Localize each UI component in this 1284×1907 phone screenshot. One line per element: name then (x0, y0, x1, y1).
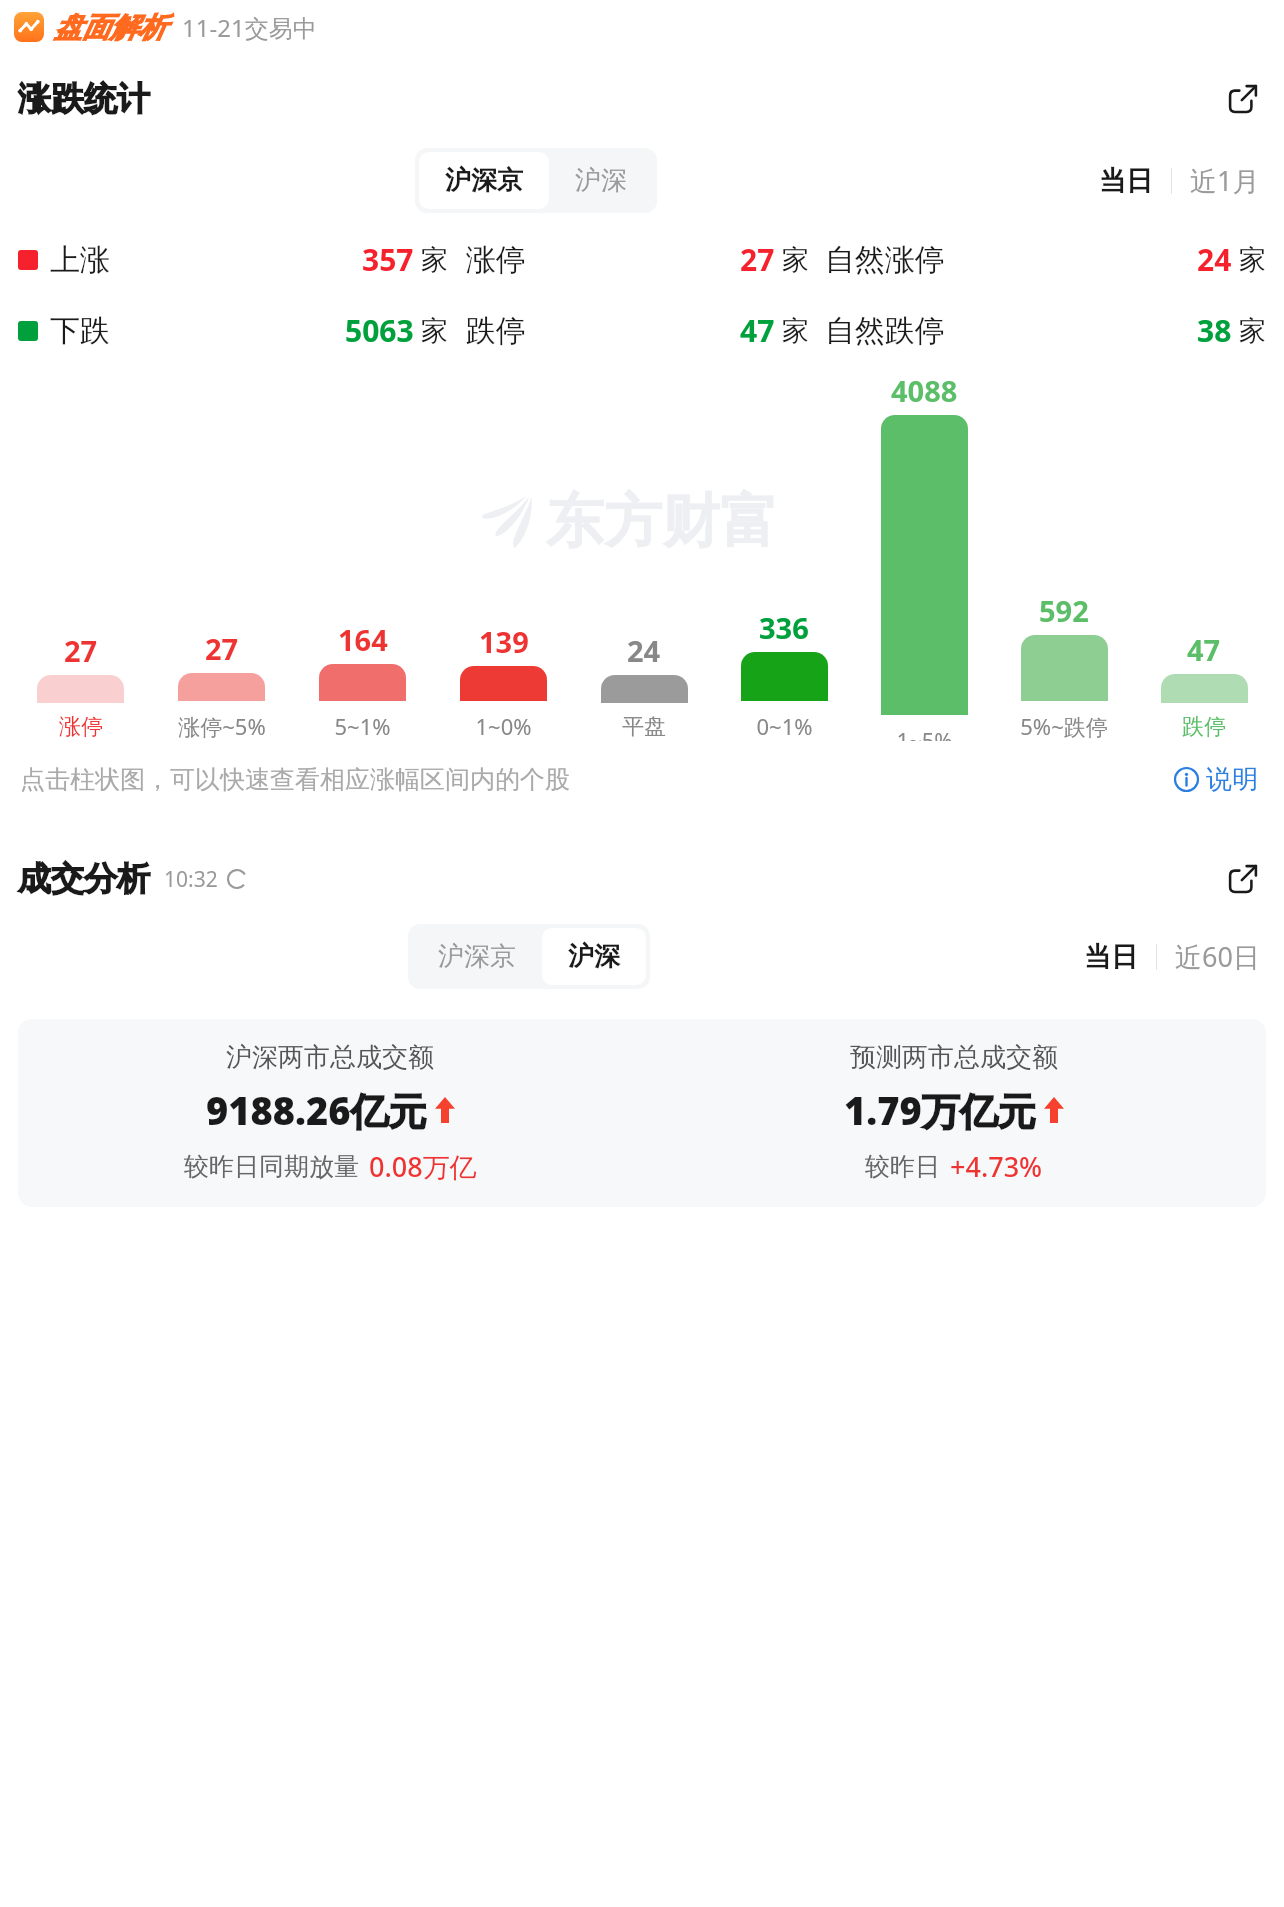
staticText: 1~0% (475, 711, 532, 741)
staticText: 11-21交易中 (182, 11, 317, 44)
staticText: 5063 (345, 310, 414, 351)
button[interactable]: 当日 (1078, 932, 1144, 982)
button[interactable]: 说明 (1168, 757, 1264, 802)
staticText: 家 (1239, 243, 1266, 277)
staticText: 自然涨停 (825, 241, 945, 279)
button[interactable]: 4088 (854, 371, 994, 741)
staticText: 1~5% (896, 725, 953, 741)
staticText: 成交分析 (18, 858, 150, 900)
staticText: 家 (1239, 314, 1266, 348)
staticText: 164 (338, 620, 388, 659)
button[interactable]: Refresh (226, 868, 248, 890)
staticText: 38 (1197, 310, 1232, 351)
staticText: 27 (740, 239, 775, 280)
staticText: 点击柱状图，可以快速查看相应涨幅区间内的个股 (20, 764, 570, 795)
staticText: 5~1% (334, 711, 391, 741)
staticText: 0.08万亿 (369, 1148, 477, 1185)
button[interactable]: 当日 (1093, 156, 1159, 206)
staticText: 沪深京 (445, 164, 523, 197)
staticText: 24 (1197, 239, 1232, 280)
staticText: 近60日 (1175, 938, 1260, 975)
button[interactable]: 27 (10, 371, 151, 741)
staticText: 336 (759, 608, 809, 647)
button[interactable]: 近1月 (1184, 154, 1266, 207)
button[interactable]: Open detail (1220, 856, 1266, 902)
button[interactable]: 336 (714, 371, 854, 741)
staticText: 家 (782, 314, 809, 348)
staticText: 说明 (1206, 763, 1258, 796)
staticText: 跌停 (1182, 713, 1226, 741)
staticText: 4088 (891, 371, 958, 410)
staticText: 涨停~5% (178, 711, 266, 741)
staticText: 当日 (1099, 164, 1153, 198)
staticText: 盘面解析 (54, 10, 166, 45)
staticText: 10:32 (164, 865, 218, 894)
staticText: 自然跌停 (825, 312, 945, 350)
button[interactable]: 沪深京 (419, 152, 549, 209)
staticText: 沪深 (575, 164, 627, 197)
staticText: 近1月 (1190, 162, 1260, 199)
button[interactable]: 沪深京 (412, 928, 542, 985)
button[interactable]: 近60日 (1169, 930, 1266, 983)
button[interactable]: 24 (574, 371, 714, 741)
button[interactable]: 139 (433, 371, 574, 741)
staticText: 592 (1039, 591, 1089, 630)
button[interactable]: 沪深 (542, 928, 646, 985)
staticText: 上涨 (50, 241, 110, 279)
staticText: 家 (421, 243, 448, 277)
staticText: 24 (627, 631, 661, 670)
staticText: 139 (479, 622, 529, 661)
staticText: 1.79万亿元 (844, 1084, 1036, 1136)
staticText: 0~1% (756, 711, 813, 741)
staticText: 下跌 (50, 312, 110, 350)
staticText: 沪深 (568, 940, 620, 973)
staticText: 357 (362, 239, 414, 280)
staticText: 预测两市总成交额 (850, 1041, 1058, 1074)
button[interactable]: 47 (1134, 371, 1274, 741)
staticText: 平盘 (622, 713, 666, 741)
staticText: 当日 (1084, 940, 1138, 974)
staticText: 家 (782, 243, 809, 277)
button[interactable]: 沪深 (549, 152, 653, 209)
staticText: +4.73% (950, 1148, 1043, 1185)
staticText: 27 (205, 629, 239, 668)
staticText: 47 (1187, 630, 1221, 669)
staticText: 47 (740, 310, 775, 351)
button[interactable]: 592 (994, 371, 1134, 741)
staticText: 涨跌统计 (18, 78, 150, 120)
staticText: 沪深两市总成交额 (226, 1041, 434, 1074)
staticText: 东方财富 (546, 485, 778, 558)
staticText: 沪深京 (438, 940, 516, 973)
staticText: 27 (64, 631, 98, 670)
button[interactable]: Open detail (1220, 76, 1266, 122)
staticText: 涨停 (59, 713, 103, 741)
button[interactable]: 27 (151, 371, 292, 741)
staticText: 家 (421, 314, 448, 348)
button[interactable]: 164 (292, 371, 433, 741)
staticText: 较昨日同期放量 (184, 1151, 359, 1182)
staticText: 5%~跌停 (1020, 711, 1108, 741)
staticText: 涨停 (466, 241, 526, 279)
staticText: 9188.26亿元 (206, 1084, 427, 1136)
staticText: 较昨日 (865, 1151, 940, 1182)
button[interactable]: 沪深两市总成交额 (18, 1041, 642, 1185)
staticText: 跌停 (466, 312, 526, 350)
button[interactable]: 预测两市总成交额 (642, 1041, 1266, 1185)
